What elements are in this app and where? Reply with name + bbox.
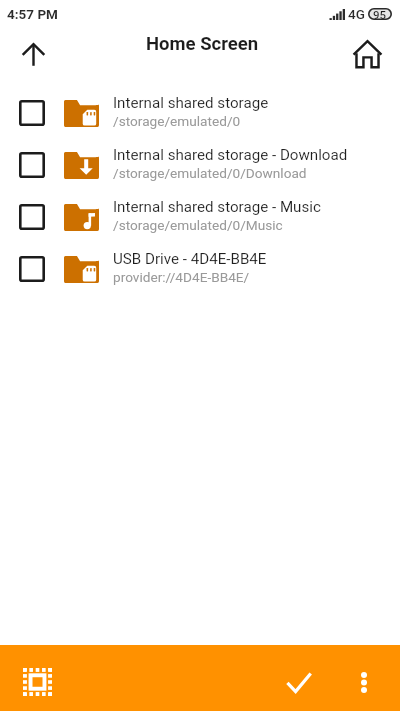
button[interactable]: Select Internal shared storage - Downloa…: [0, 139, 64, 191]
staticText: provider://4D4E-BB4E/: [113, 269, 250, 285]
staticText: 4:57 PM: [7, 6, 58, 22]
staticText: 95: [373, 8, 387, 21]
staticText: /storage/emulated/0/Music: [113, 217, 283, 233]
staticText: Internal shared storage: [113, 94, 269, 112]
staticText: 4G: [348, 6, 365, 22]
button[interactable]: Select Internal shared storage: [0, 87, 400, 139]
staticText: Home Screen: [146, 33, 259, 55]
staticText: Internal shared storage - Music: [113, 198, 321, 216]
staticText: Internal shared storage - Download: [113, 146, 348, 164]
button[interactable]: Confirm selection: [273, 656, 325, 708]
button[interactable]: Navigate up: [9, 30, 57, 78]
button[interactable]: Select Internal shared storage: [0, 87, 64, 139]
button[interactable]: Select USB Drive - 4D4E-BB4E: [0, 243, 400, 295]
button[interactable]: Select USB Drive - 4D4E-BB4E: [0, 243, 64, 295]
button[interactable]: Select Internal shared storage - Music: [0, 191, 64, 243]
button[interactable]: Select Internal shared storage - Music: [0, 191, 400, 243]
staticText: USB Drive - 4D4E-BB4E: [113, 250, 267, 268]
button[interactable]: Select Internal shared storage - Downloa…: [0, 139, 400, 191]
button[interactable]: Home: [343, 30, 391, 78]
staticText: /storage/emulated/0/Download: [113, 165, 307, 181]
button[interactable]: Select all: [8, 653, 66, 711]
button[interactable]: More options: [338, 656, 390, 708]
staticText: /storage/emulated/0: [113, 113, 241, 129]
